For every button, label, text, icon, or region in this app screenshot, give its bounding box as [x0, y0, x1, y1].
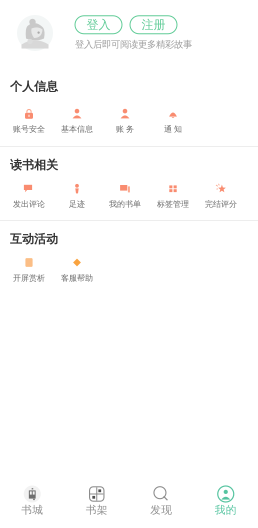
staticText: 我的书单 [109, 199, 141, 209]
button[interactable]: 书城 [0, 484, 64, 516]
staticText: 通 知 [164, 124, 182, 134]
button[interactable]: 通 知 [149, 107, 197, 134]
staticText: 客服帮助 [61, 273, 93, 283]
button[interactable]: 发现 [129, 484, 193, 516]
staticText: 标签管理 [157, 199, 189, 209]
button[interactable]: 书架 [64, 484, 129, 516]
staticText: 登入后即可阅读更多精彩故事 [75, 39, 192, 50]
staticText: 账 务 [116, 124, 134, 134]
button[interactable]: 注册 [130, 16, 177, 34]
staticText: 登入 [86, 17, 110, 32]
button[interactable]: 账 务 [101, 107, 149, 134]
button[interactable]: 账号安全 [5, 107, 53, 134]
button[interactable]: 我的书单 [101, 182, 149, 209]
staticText: 读书相关 [10, 158, 58, 172]
staticText: 我的 [215, 503, 237, 516]
staticText: 账号安全 [13, 124, 45, 134]
button[interactable]: 基本信息 [53, 107, 101, 134]
staticText: 发出评论 [13, 199, 45, 209]
staticText: 个人信息 [10, 79, 58, 94]
button[interactable]: 完结评分 [197, 182, 245, 209]
button[interactable]: 标签管理 [149, 182, 197, 209]
button[interactable]: 客服帮助 [53, 256, 101, 283]
button[interactable]: 开屏赏析 [5, 256, 53, 283]
staticText: 互动活动 [10, 232, 58, 246]
staticText: 完结评分 [205, 199, 237, 209]
staticText: 书架 [86, 503, 108, 516]
staticText: 开屏赏析 [13, 273, 45, 283]
staticText: 足迹 [69, 199, 85, 209]
staticText: 基本信息 [61, 124, 93, 134]
staticText: 发现 [150, 503, 172, 516]
staticText: 书城 [21, 503, 43, 516]
staticText: 注册 [141, 17, 165, 32]
button[interactable]: 发出评论 [5, 182, 53, 209]
button[interactable]: 我的 [193, 484, 258, 516]
button[interactable]: 足迹 [53, 182, 101, 209]
button[interactable]: 登入 [75, 16, 122, 34]
